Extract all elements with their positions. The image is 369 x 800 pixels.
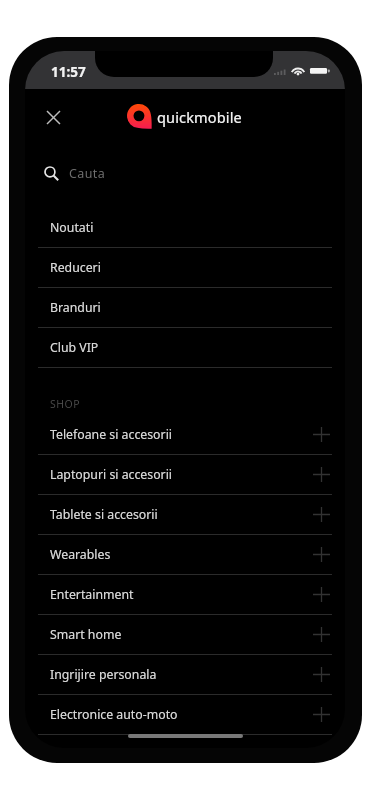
- button[interactable]: Laptopuri si accesorii: [25, 455, 345, 494]
- staticText: Wearables: [50, 546, 111, 563]
- staticText: Telefoane si accesorii: [50, 426, 172, 443]
- staticText: Laptopuri si accesorii: [50, 466, 173, 483]
- staticText: Entertainment: [50, 586, 134, 603]
- button[interactable]: Cauta: [25, 139, 345, 208]
- button[interactable]: Noutati: [25, 208, 345, 247]
- button[interactable]: Electronice auto-moto: [25, 695, 345, 734]
- staticText: Tablete si accesorii: [50, 506, 158, 523]
- staticText: Noutati: [50, 219, 94, 236]
- staticText: Ingrijire personala: [50, 666, 157, 683]
- staticText: quickmobile: [157, 107, 242, 127]
- staticText: 11:57: [51, 63, 86, 81]
- button[interactable]: Ingrijire personala: [25, 655, 345, 694]
- button[interactable]: Wearables: [25, 535, 345, 574]
- button[interactable]: Close: [38, 102, 68, 132]
- button[interactable]: Telefoane si accesorii: [25, 415, 345, 454]
- staticText: Electronice auto-moto: [50, 706, 178, 723]
- staticText: Smart home: [50, 626, 122, 643]
- staticText: SHOP: [50, 397, 81, 411]
- button[interactable]: Smart home: [25, 615, 345, 654]
- staticText: Club VIP: [50, 339, 99, 356]
- button[interactable]: Reduceri: [25, 248, 345, 287]
- button[interactable]: Entertainment: [25, 575, 345, 614]
- button[interactable]: Tablete si accesorii: [25, 495, 345, 534]
- button[interactable]: Branduri: [25, 288, 345, 327]
- staticText: Branduri: [50, 299, 101, 316]
- staticText: Reduceri: [50, 259, 101, 276]
- staticText: Cauta: [69, 165, 106, 182]
- button[interactable]: Club VIP: [25, 328, 345, 367]
